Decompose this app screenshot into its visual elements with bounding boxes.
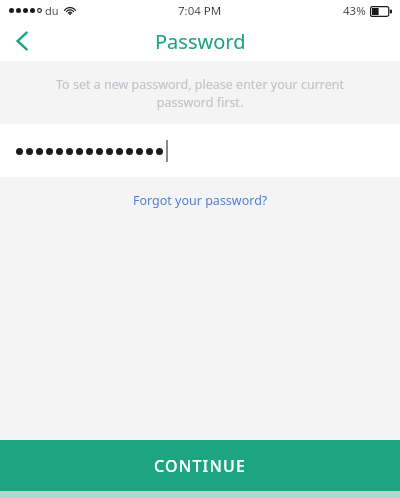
button[interactable]: Back bbox=[0, 21, 44, 61]
staticText: 43% bbox=[343, 3, 366, 19]
staticText: 7:04 PM bbox=[178, 3, 222, 19]
staticText: Password bbox=[155, 28, 246, 55]
button[interactable] bbox=[0, 124, 400, 177]
staticText: CONTINUE bbox=[154, 455, 247, 477]
button[interactable]: CONTINUE bbox=[0, 440, 400, 491]
staticText: Forgot your password? bbox=[133, 192, 268, 209]
button[interactable]: Forgot your password? bbox=[121, 186, 280, 215]
staticText: du bbox=[45, 3, 59, 18]
staticText: To set a new password, please enter your… bbox=[36, 76, 364, 111]
